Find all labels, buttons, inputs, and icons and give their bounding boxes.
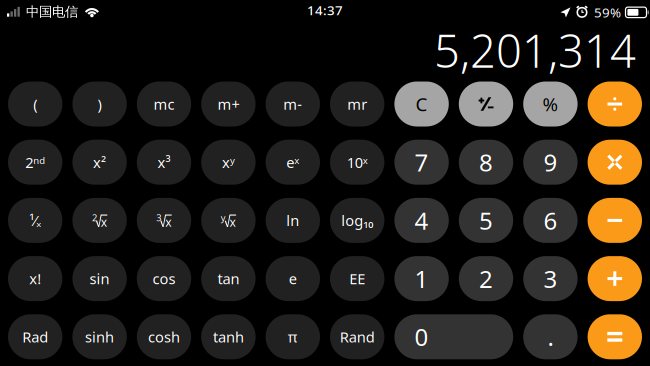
- staticText: 1: [415, 263, 429, 295]
- button[interactable]: 2: [72, 198, 127, 243]
- button[interactable]: Plus: [588, 256, 642, 301]
- button[interactable]: %: [523, 81, 578, 126]
- button[interactable]: (: [8, 81, 62, 126]
- button[interactable]: tanh: [201, 314, 256, 359]
- staticText: (: [33, 94, 37, 114]
- staticText: 59%: [594, 3, 621, 21]
- button[interactable]: sin: [72, 256, 127, 301]
- staticText: cos: [152, 269, 175, 288]
- staticText: 10ˣ: [347, 152, 368, 172]
- staticText: tan: [217, 269, 239, 288]
- button[interactable]: EE: [330, 256, 384, 301]
- button[interactable]: π: [266, 314, 320, 359]
- staticText: 2: [92, 211, 97, 224]
- staticText: y: [221, 211, 226, 224]
- button[interactable]: cos: [137, 256, 191, 301]
- button[interactable]: 6: [523, 198, 578, 243]
- staticText: m+: [217, 94, 239, 114]
- staticText: x!: [29, 269, 41, 288]
- button[interactable]: xʸ: [201, 140, 256, 185]
- staticText: EE: [349, 269, 365, 288]
- staticText: sinh: [85, 327, 114, 347]
- staticText: x³: [157, 152, 170, 172]
- button[interactable]: 3: [137, 198, 191, 243]
- button[interactable]: cosh: [137, 314, 191, 359]
- staticText: x: [165, 214, 171, 230]
- staticText: 2ⁿᵈ: [25, 152, 45, 172]
- staticText: 3: [156, 211, 161, 224]
- staticText: .: [547, 321, 553, 353]
- button[interactable]: mr: [330, 81, 384, 126]
- button[interactable]: x!: [8, 256, 62, 301]
- button[interactable]: x³: [137, 140, 191, 185]
- staticText: ¹⁄ₓ: [29, 211, 41, 230]
- staticText: ): [98, 94, 102, 114]
- button[interactable]: tan: [201, 256, 256, 301]
- button[interactable]: ¹⁄ₓ: [8, 198, 62, 243]
- staticText: m-: [283, 94, 302, 114]
- button[interactable]: 10ˣ: [330, 140, 384, 185]
- button[interactable]: 7: [394, 140, 449, 185]
- button[interactable]: Minus: [588, 198, 642, 243]
- button[interactable]: 1: [394, 256, 449, 301]
- staticText: ln: [286, 211, 299, 230]
- button[interactable]: m-: [266, 81, 320, 126]
- staticText: %: [542, 92, 558, 116]
- staticText: 4: [415, 204, 429, 236]
- button[interactable]: ln: [266, 198, 320, 243]
- staticText: mc: [153, 94, 174, 114]
- staticText: 3: [543, 263, 557, 295]
- button[interactable]: Equals: [588, 314, 642, 359]
- staticText: Rad: [22, 327, 48, 347]
- staticText: e: [289, 269, 297, 288]
- button[interactable]: ): [72, 81, 127, 126]
- staticText: mr: [347, 94, 367, 114]
- staticText: 0: [415, 321, 429, 353]
- staticText: sin: [90, 269, 110, 288]
- button[interactable]: .: [523, 314, 578, 359]
- button[interactable]: log₁₀: [330, 198, 384, 243]
- button[interactable]: y: [201, 198, 256, 243]
- button[interactable]: m+: [201, 81, 256, 126]
- staticText: 中国电信: [26, 3, 78, 20]
- staticText: 8: [479, 146, 493, 178]
- staticText: 14:37: [307, 1, 343, 19]
- staticText: 5,201,314: [434, 20, 636, 80]
- staticText: eˣ: [286, 152, 299, 172]
- button[interactable]: 2: [459, 256, 513, 301]
- button[interactable]: C: [394, 81, 449, 126]
- button[interactable]: 3: [523, 256, 578, 301]
- button[interactable]: Rand: [330, 314, 384, 359]
- staticText: xʸ: [222, 152, 235, 172]
- staticText: x²: [93, 152, 106, 172]
- button[interactable]: mc: [137, 81, 191, 126]
- staticText: 2: [479, 263, 493, 295]
- staticText: 5: [479, 204, 493, 236]
- button[interactable]: Multiply: [588, 140, 642, 185]
- button[interactable]: 5: [459, 198, 513, 243]
- button[interactable]: Rad: [8, 314, 62, 359]
- button[interactable]: 0: [394, 314, 513, 359]
- staticText: log₁₀: [341, 211, 373, 230]
- button[interactable]: 9: [523, 140, 578, 185]
- staticText: C: [416, 92, 428, 116]
- button[interactable]: e: [266, 256, 320, 301]
- button[interactable]: sinh: [72, 314, 127, 359]
- button[interactable]: 4: [394, 198, 449, 243]
- button[interactable]: 2ⁿᵈ: [8, 140, 62, 185]
- staticText: cosh: [148, 327, 180, 347]
- staticText: π: [288, 327, 298, 347]
- button[interactable]: x²: [72, 140, 127, 185]
- staticText: tanh: [213, 327, 244, 347]
- button[interactable]: Toggle sign: [459, 81, 513, 126]
- button[interactable]: Divide: [588, 81, 642, 126]
- staticText: 6: [543, 204, 557, 236]
- staticText: x: [230, 214, 236, 230]
- staticText: Rand: [340, 327, 375, 347]
- staticText: 7: [415, 146, 429, 178]
- staticText: x: [101, 214, 107, 230]
- staticText: 9: [543, 146, 557, 178]
- button[interactable]: 8: [459, 140, 513, 185]
- button[interactable]: eˣ: [266, 140, 320, 185]
